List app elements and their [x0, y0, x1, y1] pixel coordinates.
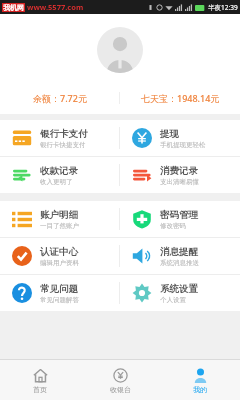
staticText: 常见问题解答	[40, 296, 79, 304]
staticText: www.5577.com	[27, 2, 84, 12]
staticText: 手机提现更轻松	[160, 141, 206, 149]
staticText: 消费记录	[160, 165, 198, 177]
staticText: 收款记录	[40, 165, 78, 177]
staticText: 提现	[160, 128, 179, 140]
button[interactable]: 密码管理	[120, 201, 240, 237]
staticText: 七天宝：1948.14元	[141, 92, 220, 104]
staticText: 认证中心	[40, 246, 78, 258]
staticText: 账户明细	[40, 209, 78, 221]
staticText: 系统设置	[160, 283, 198, 295]
button[interactable]: 首页	[0, 360, 80, 400]
button[interactable]: Avatar	[97, 27, 143, 73]
button[interactable]: 收银台	[80, 360, 160, 400]
staticText: 银行卡快捷支付	[40, 141, 86, 149]
button[interactable]: 提现	[120, 120, 240, 156]
staticText: 常见问题	[40, 283, 78, 295]
button[interactable]: 消费记录	[120, 157, 240, 193]
staticText: 我的	[193, 385, 207, 394]
staticText: 修改密码	[160, 222, 186, 230]
staticText: 个人设置	[160, 296, 186, 304]
staticText: 半夜12:39	[208, 3, 238, 12]
button[interactable]: 银行卡支付	[0, 120, 119, 156]
staticText: 收入更明了	[40, 178, 73, 186]
staticText: 余额：7.72元	[33, 92, 87, 104]
button[interactable]: 常见问题	[0, 275, 119, 311]
staticText: 银行卡支付	[40, 128, 88, 140]
staticText: 支出清晰易懂	[160, 178, 199, 186]
staticText: 编辑用户资料	[40, 259, 79, 267]
staticText: 首页	[33, 385, 47, 394]
button[interactable]: 认证中心	[0, 238, 119, 274]
staticText: 密码管理	[160, 209, 198, 221]
staticText: 我机网	[3, 3, 24, 12]
button[interactable]: 消息提醒	[120, 238, 240, 274]
staticText: 消息提醒	[160, 246, 198, 258]
button[interactable]: 收款记录	[0, 157, 119, 193]
staticText: 系统消息推送	[160, 259, 199, 267]
button[interactable]: 账户明细	[0, 201, 119, 237]
staticText: 一目了然账户	[40, 222, 79, 230]
staticText: 收银台	[110, 385, 131, 394]
button[interactable]: 我的	[160, 360, 240, 400]
button[interactable]: 系统设置	[120, 275, 240, 311]
